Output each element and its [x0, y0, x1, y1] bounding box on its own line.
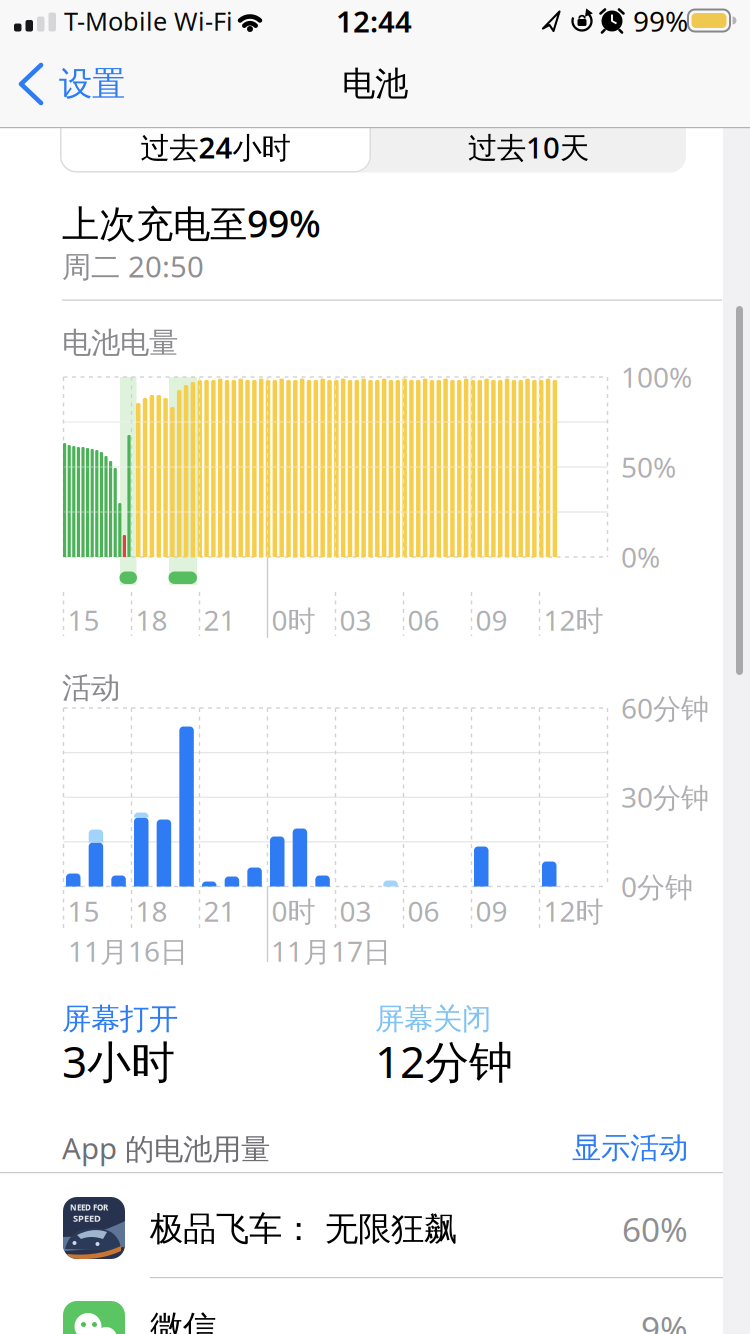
staticText: 0时: [271, 892, 315, 930]
staticText: 06: [407, 601, 439, 639]
staticText: 12时: [543, 892, 603, 930]
staticText: 活动: [62, 670, 120, 706]
staticText: 11月16日: [68, 932, 188, 970]
staticText: App 的电池用量: [62, 1128, 270, 1167]
staticText: 18: [135, 601, 167, 639]
staticText: NEED FOR: [70, 1202, 108, 1213]
staticText: 09: [475, 601, 507, 639]
staticText: 60分钟: [621, 689, 709, 727]
staticText: 9%: [641, 1306, 688, 1334]
staticText: 50%: [621, 448, 676, 486]
staticText: 过去24小时: [140, 127, 290, 166]
staticText: 极品飞车： 无限狂飙: [150, 1208, 457, 1249]
staticText: 微信: [150, 1307, 216, 1334]
button[interactable]: 设置: [14, 54, 154, 114]
staticText: 15: [67, 892, 99, 930]
staticText: 12:44: [336, 1, 412, 40]
staticText: 上次充电至99%: [62, 198, 321, 248]
staticText: 屏幕关闭: [375, 1001, 491, 1037]
staticText: 0时: [271, 601, 315, 639]
staticText: 过去10天: [468, 127, 589, 166]
staticText: SPEED: [73, 1212, 101, 1224]
staticText: T-Mobile Wi-Fi: [64, 4, 233, 38]
staticText: 60%: [622, 1207, 688, 1251]
button[interactable]: 过去24小时: [60, 112, 371, 172]
staticText: 12时: [543, 601, 603, 639]
staticText: 0%: [621, 538, 660, 576]
staticText: 03: [339, 601, 371, 639]
staticText: 电池电量: [62, 325, 178, 361]
staticText: 设置: [59, 63, 125, 104]
button[interactable]: 微信: [0, 1277, 750, 1334]
staticText: 09: [475, 892, 507, 930]
staticText: 30分钟: [621, 778, 709, 816]
button[interactable]: NEED FOR: [0, 1172, 750, 1277]
staticText: 11月17日: [271, 932, 391, 970]
staticText: 15: [67, 601, 99, 639]
staticText: 18: [135, 892, 167, 930]
staticText: 周二 20:50: [62, 246, 204, 285]
staticText: 06: [407, 892, 439, 930]
staticText: 电池: [342, 63, 408, 104]
staticText: 100%: [621, 358, 692, 396]
staticText: 21: [203, 601, 235, 639]
button[interactable]: 过去10天: [371, 112, 686, 172]
staticText: 12分钟: [375, 1032, 513, 1090]
staticText: 0分钟: [621, 868, 693, 905]
staticText: 21: [203, 892, 235, 930]
staticText: 03: [339, 892, 371, 930]
staticText: 99%: [633, 2, 688, 40]
staticText: 3小时: [62, 1032, 175, 1090]
button[interactable]: 显示活动: [488, 1116, 688, 1180]
staticText: 显示活动: [572, 1130, 688, 1166]
staticText: 屏幕打开: [62, 1001, 178, 1037]
